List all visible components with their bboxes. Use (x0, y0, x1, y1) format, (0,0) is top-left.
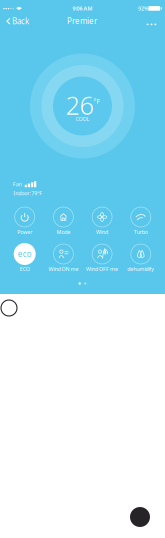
staticText: Wind ON me (48, 265, 78, 273)
staticText: 9:06 AM (72, 5, 92, 12)
button[interactable]: Turbo (122, 205, 160, 235)
staticText: dehumidify (127, 265, 154, 273)
staticText: Power (17, 228, 32, 236)
button[interactable]: Wind ON me (44, 242, 82, 272)
button[interactable]: Back (2, 11, 34, 31)
staticText: 92% (138, 5, 149, 12)
staticText: Premier (67, 15, 97, 26)
staticText: eco (18, 249, 32, 259)
staticText: Indoor: 79°F (13, 190, 42, 197)
button[interactable]: dehumidify (122, 242, 160, 272)
button[interactable]: Power (6, 205, 44, 235)
button[interactable]: Wind (83, 205, 121, 235)
staticText: Back (12, 16, 29, 26)
staticText: 26 (65, 88, 93, 122)
staticText: Fan (13, 181, 22, 188)
staticText: Mode (56, 228, 70, 236)
staticText: Wind (96, 228, 108, 236)
button[interactable]: Mode (44, 205, 82, 235)
button[interactable]: More options (142, 17, 161, 31)
staticText: COOL (75, 115, 89, 123)
staticText: ECO (20, 265, 30, 273)
button[interactable]: eco (6, 242, 44, 272)
staticText: Turbo (134, 228, 148, 236)
button[interactable]: Wind OFF me (83, 242, 121, 272)
staticText: °F (93, 97, 99, 106)
staticText: Wind OFF me (86, 265, 118, 273)
